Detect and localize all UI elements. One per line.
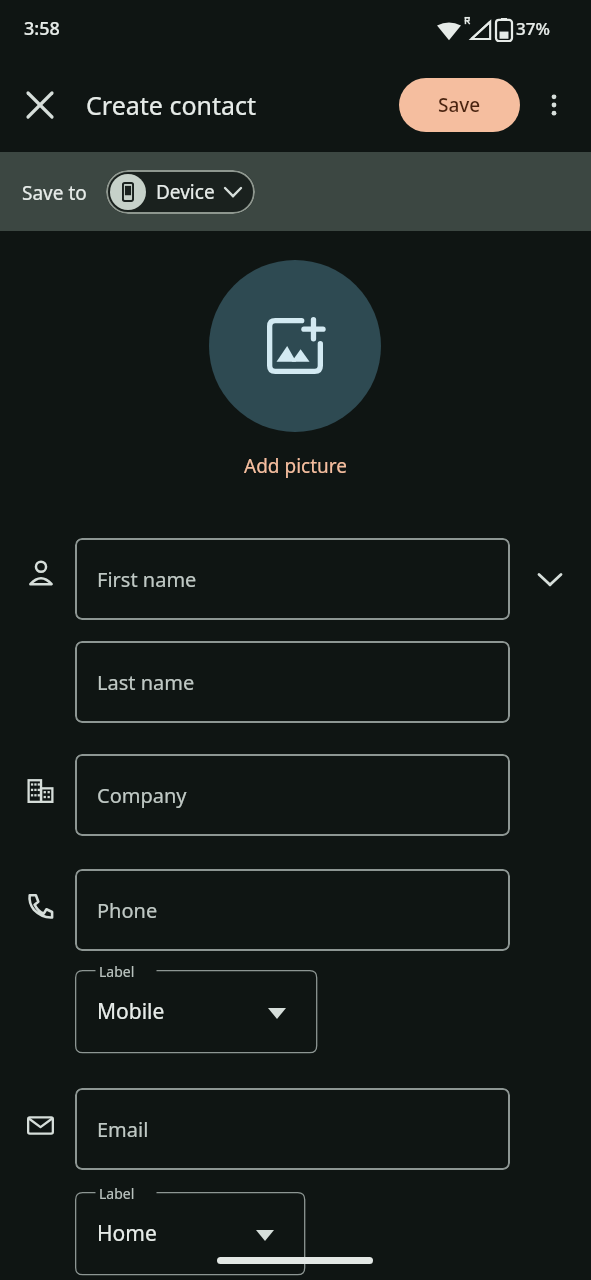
staticText: First name: [97, 566, 197, 593]
button[interactable]: Label: [75, 970, 318, 1054]
staticText: Company: [97, 782, 187, 809]
button[interactable]: Email: [75, 1088, 510, 1170]
button[interactable]: Add picture: [224, 450, 367, 482]
staticText: Create contact: [86, 88, 257, 122]
staticText: Label: [99, 1184, 135, 1203]
staticText: Home: [97, 1219, 157, 1248]
staticText: 37%: [516, 17, 550, 40]
button[interactable]: Close: [14, 79, 66, 131]
button[interactable]: Device: [106, 170, 255, 214]
staticText: Add picture: [244, 453, 347, 479]
button[interactable]: Save: [399, 78, 520, 132]
button[interactable]: Phone: [75, 869, 510, 951]
staticText: Email: [97, 1116, 149, 1143]
staticText: Label: [99, 962, 135, 981]
staticText: Mobile: [97, 997, 165, 1026]
button[interactable]: More options: [528, 79, 580, 131]
staticText: Device: [156, 179, 215, 205]
button[interactable]: Expand name fields: [526, 555, 574, 603]
staticText: Last name: [97, 669, 195, 696]
button[interactable]: Last name: [75, 641, 510, 723]
button[interactable]: Add picture: [209, 260, 381, 432]
button[interactable]: Label: [75, 1192, 306, 1276]
staticText: Save: [438, 92, 481, 118]
staticText: Save to: [22, 180, 87, 206]
staticText: Phone: [97, 897, 158, 924]
button[interactable]: First name: [75, 538, 510, 620]
staticText: 3:58: [24, 16, 60, 41]
button[interactable]: Company: [75, 754, 510, 836]
